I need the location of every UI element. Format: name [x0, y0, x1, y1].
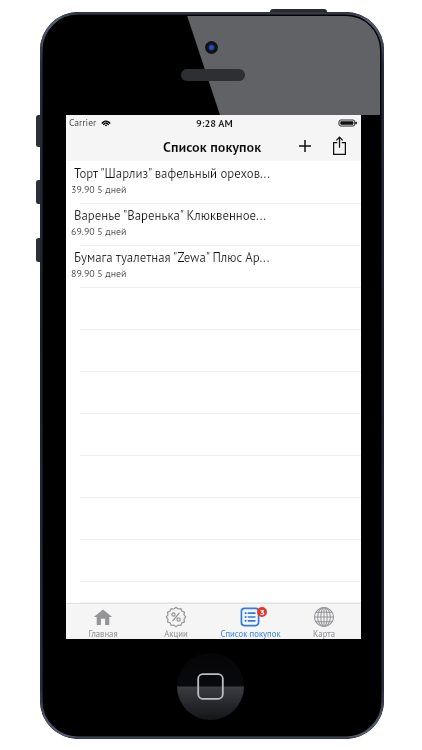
staticText: Карта: [313, 628, 335, 639]
button[interactable]: Бумага туалетная "Zewa" Плюс Ар...: [66, 246, 361, 288]
staticText: Список покупок: [163, 138, 262, 156]
button[interactable]: 3: [213, 604, 287, 639]
staticText: Главная: [88, 628, 118, 639]
staticText: 69.90 5 дней: [71, 225, 127, 238]
button[interactable]: Добавить: [292, 132, 318, 160]
staticText: Список покупок: [220, 628, 281, 639]
staticText: Carrier: [69, 116, 97, 128]
button[interactable]: Акции: [139, 604, 213, 639]
staticText: Торт "Шарлиз" вафельный орехов...: [74, 165, 270, 182]
button[interactable]: Варенье "Варенька" Клюквенное...: [66, 204, 361, 246]
button[interactable]: Главная: [66, 604, 139, 639]
staticText: 89.90 5 дней: [71, 267, 127, 280]
staticText: 39.90 5 дней: [71, 183, 127, 196]
button[interactable]: Карта: [287, 604, 361, 639]
staticText: Акции: [164, 628, 188, 639]
staticText: Варенье "Варенька" Клюквенное...: [74, 207, 267, 224]
staticText: 9:28 AM: [196, 117, 233, 130]
button[interactable]: Поделиться: [326, 131, 352, 159]
button[interactable]: Торт "Шарлиз" вафельный орехов...: [66, 162, 361, 204]
staticText: 3: [260, 607, 265, 617]
staticText: Бумага туалетная "Zewa" Плюс Ар...: [74, 249, 270, 266]
